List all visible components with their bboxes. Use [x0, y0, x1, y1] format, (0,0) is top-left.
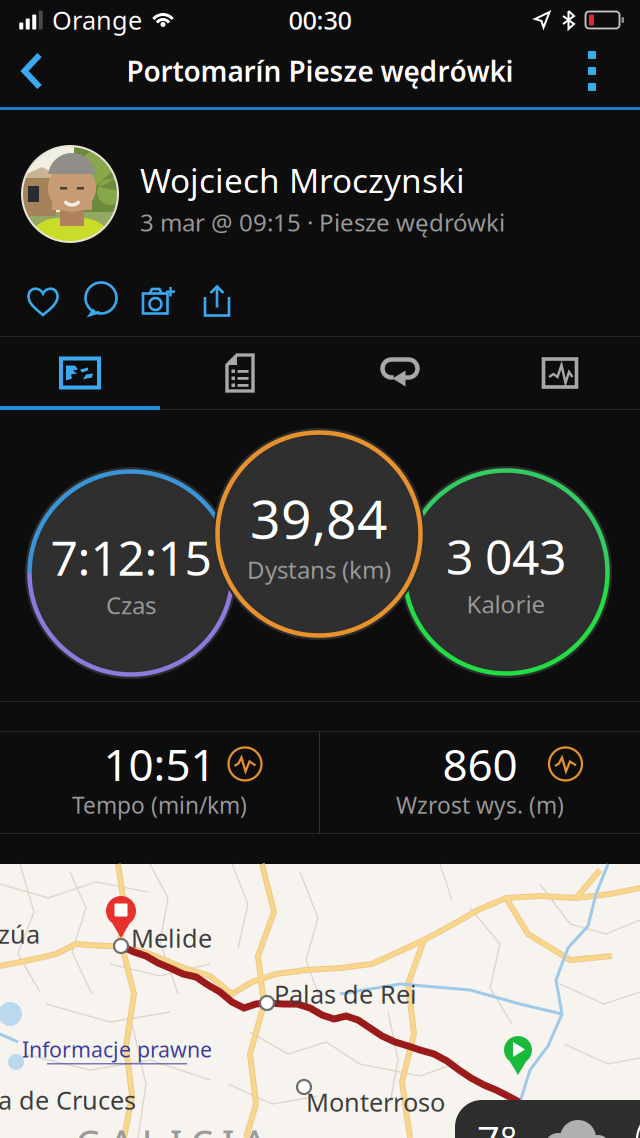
staticText: Dystans (km): [247, 553, 391, 585]
staticText: a de Cruces: [0, 1083, 136, 1117]
button[interactable]: Charts: [480, 337, 640, 409]
staticText: 7:12:15: [50, 525, 211, 589]
button[interactable]: Map: [0, 337, 160, 409]
button[interactable]: Like: [14, 275, 72, 327]
staticText: Czas: [106, 589, 156, 621]
staticText: 10:51: [103, 735, 215, 793]
staticText: 3 mar @ 09:15 · Piesze wędrówki: [140, 206, 505, 238]
staticText: 3 043: [446, 524, 566, 588]
button[interactable]: Back: [0, 38, 64, 104]
staticText: 7°: [477, 1113, 517, 1138]
staticText: Orange: [52, 3, 142, 37]
button[interactable]: Share: [188, 275, 246, 327]
staticText: Wojciech Mroczynski: [140, 158, 465, 202]
staticText: 00:30: [288, 3, 351, 37]
staticText: Palas de Rei: [274, 977, 417, 1011]
button[interactable]: Details: [160, 337, 320, 409]
button[interactable]: More options: [562, 38, 622, 104]
button[interactable]: Laps: [320, 337, 480, 409]
staticText: Monterroso: [306, 1085, 445, 1119]
staticText: Informacje prawne: [22, 1035, 212, 1063]
staticText: Kalorie: [466, 588, 545, 620]
staticText: 39,84: [250, 483, 388, 553]
staticText: Melide: [131, 921, 212, 955]
staticText: zúa: [0, 917, 40, 951]
staticText: Wzrost wys. (m): [396, 790, 564, 820]
button[interactable]: Add photo: [130, 275, 188, 327]
staticText: Tempo (min/km): [72, 790, 247, 820]
staticText: Portomarín Piesze wędrówki: [126, 52, 513, 90]
staticText: 860: [442, 735, 517, 793]
staticText: G A L I C I A: [76, 1119, 266, 1138]
button[interactable]: Comment: [72, 275, 130, 327]
